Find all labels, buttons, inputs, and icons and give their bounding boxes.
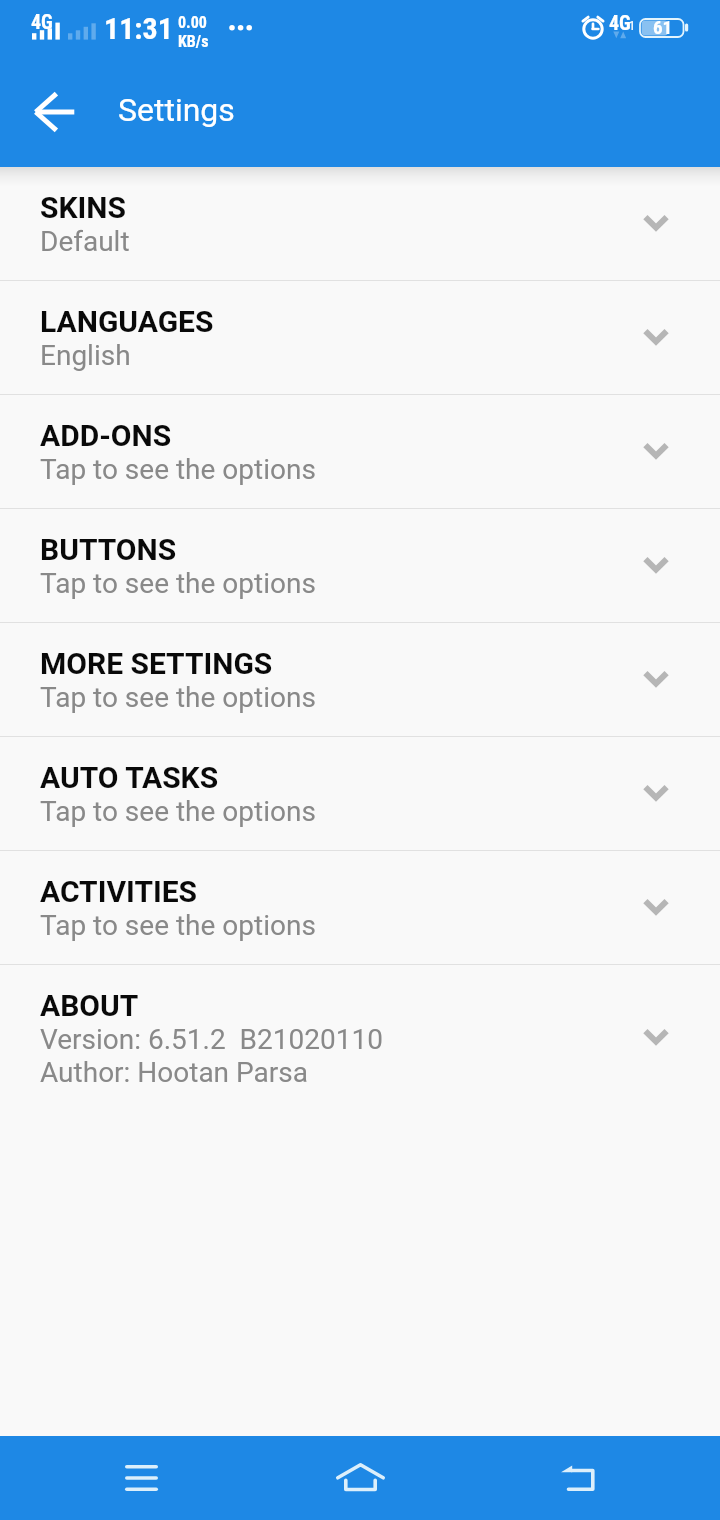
staticText: AUTO TASKS [40,760,219,795]
staticText: KB/s [178,32,209,51]
button[interactable]: Menu [100,1436,182,1520]
staticText: Tap to see the options [40,453,316,486]
staticText: ACTIVITIES [40,874,198,909]
staticText: Version: 6.51.2 B21020110 [40,1023,383,1056]
button[interactable]: Back [538,1436,620,1520]
staticText: Author: Hootan Parsa [40,1056,308,1089]
staticText: 11:31 [104,11,173,46]
button[interactable]: ACTIVITIES [0,851,720,964]
button[interactable]: BUTTONS [0,509,720,622]
staticText: 61 [653,16,673,38]
staticText: SKINS [40,190,126,225]
staticText: English [40,339,131,372]
staticText: 1 [629,19,635,33]
staticText: ABOUT [40,988,139,1023]
button[interactable]: LANGUAGES [0,281,720,394]
staticText: Tap to see the options [40,909,316,942]
button[interactable]: MORE SETTINGS [0,623,720,736]
staticText: 0.00 [178,13,207,32]
staticText: Default [40,225,130,258]
staticText: MORE SETTINGS [40,646,273,681]
button[interactable]: SKINS [0,167,720,280]
button[interactable]: Home [319,1436,401,1520]
button[interactable]: AUTO TASKS [0,737,720,850]
button[interactable]: ADD-ONS [0,395,720,508]
staticText: BUTTONS [40,532,177,567]
staticText: Tap to see the options [40,795,316,828]
staticText: ADD-ONS [40,418,172,453]
staticText: Tap to see the options [40,681,316,714]
staticText: 4G [31,10,53,33]
staticText: Settings [118,91,235,129]
staticText: Tap to see the options [40,567,316,600]
button[interactable]: ABOUT [0,965,720,1111]
button[interactable]: Back [20,77,90,147]
staticText: LANGUAGES [40,304,214,339]
staticText: 4G [609,11,631,34]
